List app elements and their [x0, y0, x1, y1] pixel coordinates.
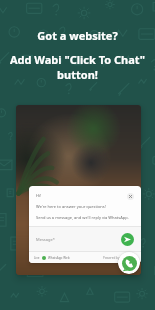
- staticText: We're here to answer your questions!: [36, 204, 106, 209]
- staticText: Hi!: [36, 193, 42, 198]
- button[interactable]: Send message: [121, 233, 134, 246]
- staticText: WhatsApp Web: [48, 256, 70, 260]
- staticText: Wabi: [128, 256, 136, 260]
- staticText: Send us a message, and we'll reply via W…: [36, 215, 129, 220]
- button[interactable]: Message*: [36, 237, 121, 242]
- button[interactable]: Close chat widget: [127, 193, 134, 200]
- staticText: Add Wabi "Click To Chat" button!: [8, 52, 147, 82]
- staticText: Message*: [36, 237, 55, 242]
- staticText: Live: [34, 256, 40, 260]
- staticText: Got a website?: [37, 28, 118, 43]
- button[interactable]: Chat on WhatsApp: [118, 252, 140, 274]
- staticText: Powered by: [103, 256, 120, 260]
